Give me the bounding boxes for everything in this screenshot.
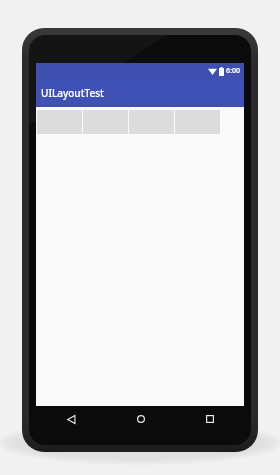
button[interactable]: Recent apps	[175, 406, 244, 432]
button[interactable]: UILayoutTest	[36, 79, 244, 107]
button[interactable]: Home	[106, 406, 175, 432]
button[interactable]: Back	[36, 406, 106, 432]
staticText: UILayoutTest	[41, 86, 104, 100]
staticText: 6:00	[226, 66, 240, 76]
